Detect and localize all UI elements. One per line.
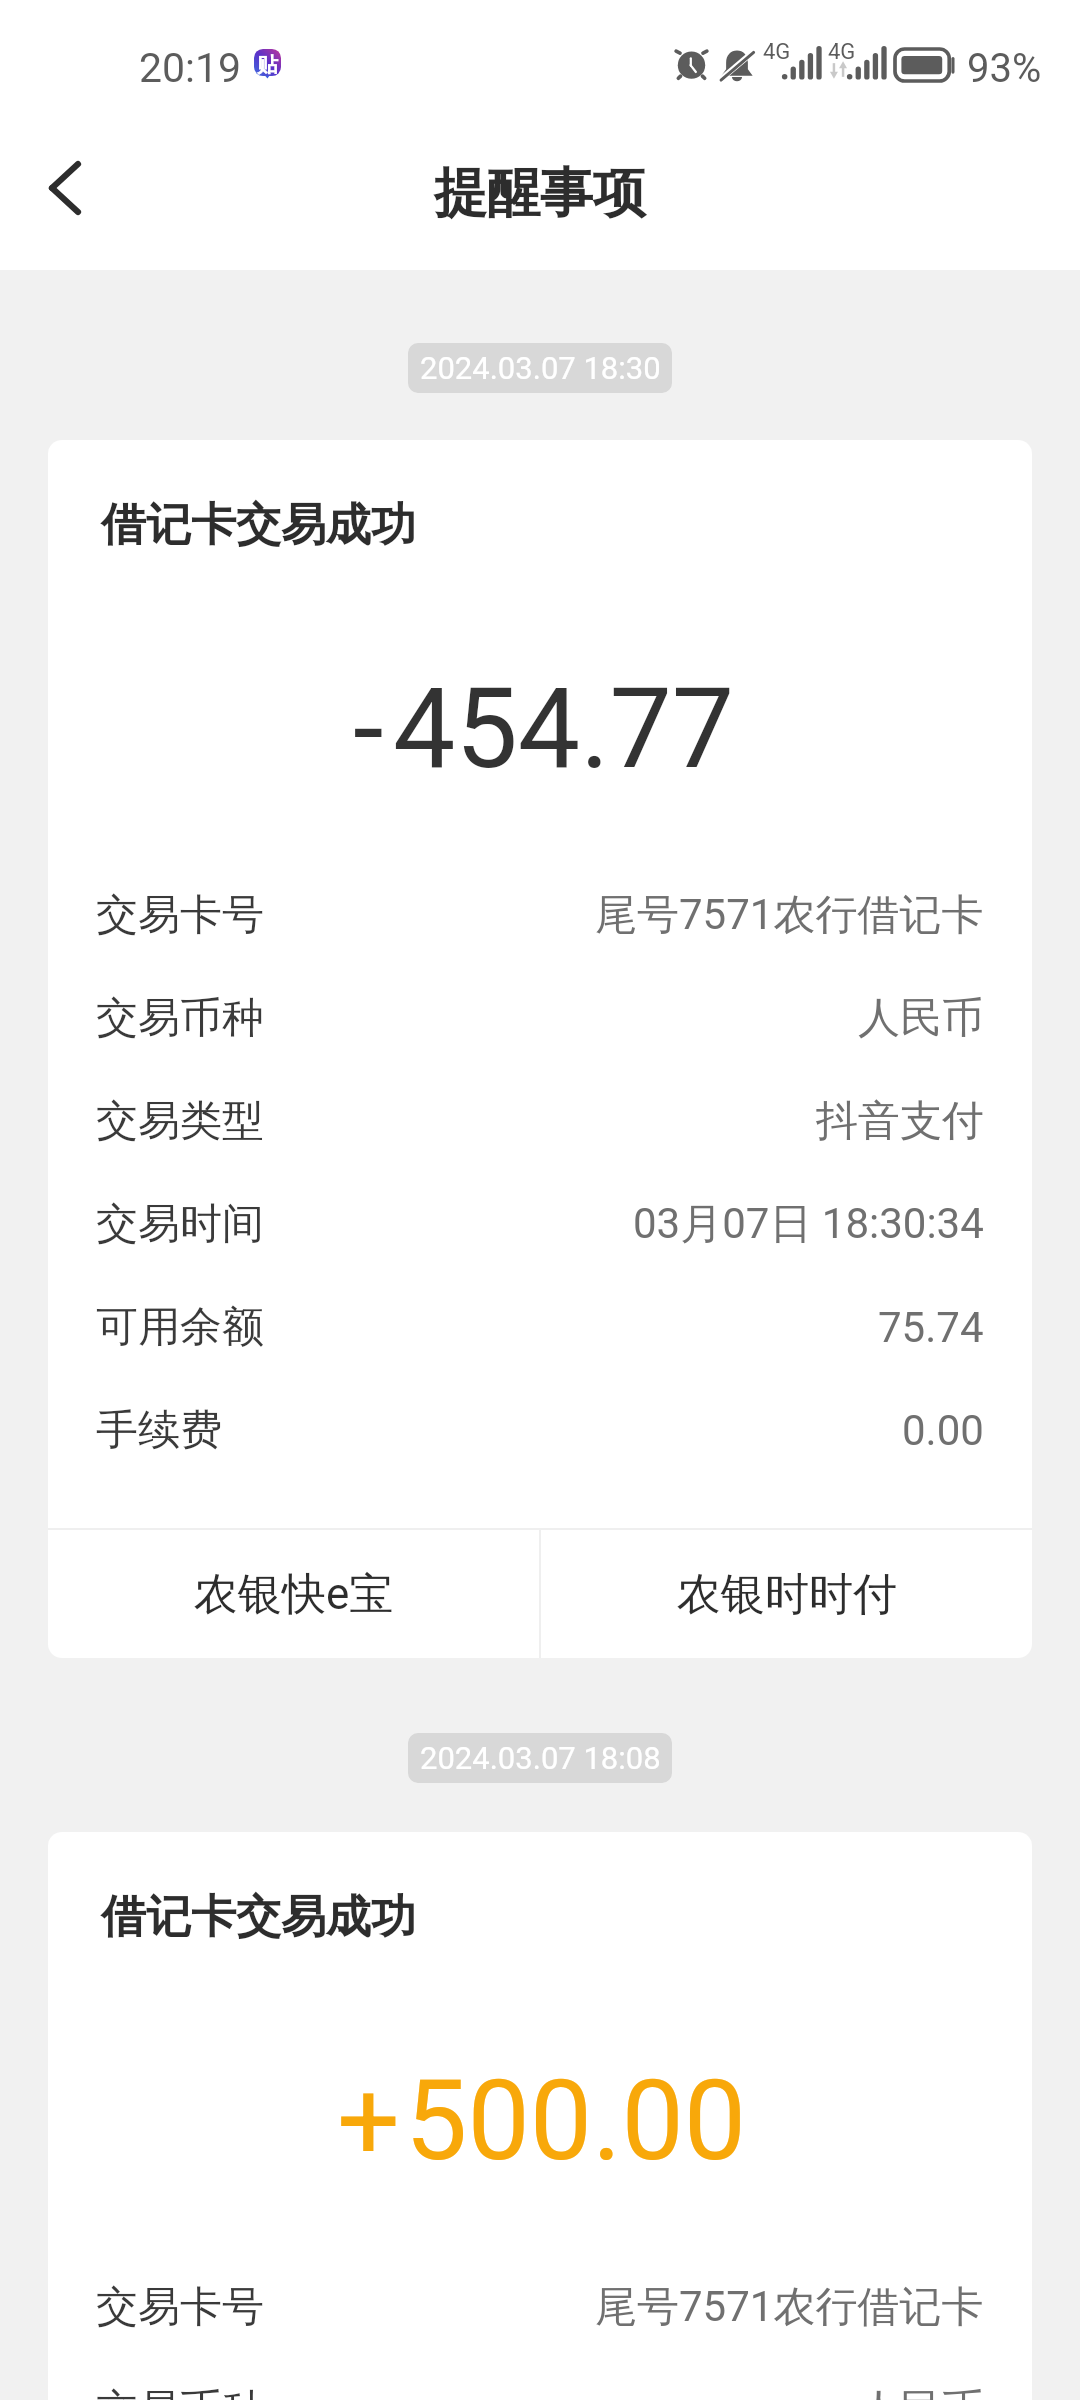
staticText: 贴 (257, 52, 278, 78)
staticText: 手续费 (96, 1404, 222, 1457)
button[interactable]: 借记卡交易成功 (48, 1832, 1032, 2400)
staticText: 0.00 (902, 1406, 984, 1455)
staticText: 2024.03.07 18:08 (420, 1740, 661, 1776)
staticText: 尾号7571农行借记卡 (595, 889, 984, 942)
staticText: 提醒事项 (434, 160, 646, 227)
staticText: 93% (967, 45, 1042, 92)
staticText: 03月07日 18:30:34 (633, 1198, 984, 1251)
staticText: + (337, 2056, 400, 2186)
staticText: 交易卡号 (96, 889, 264, 942)
button[interactable]: 农银时时付 (541, 1530, 1032, 1658)
staticText: 人民币 (858, 2384, 984, 2400)
staticText: 交易卡号 (96, 2281, 264, 2334)
staticText: 4G (828, 39, 856, 65)
button[interactable]: 农银快e宝 (48, 1530, 539, 1658)
staticText: 尾号7571农行借记卡 (595, 2281, 984, 2334)
staticText: 20:19 (139, 44, 242, 92)
staticText: 75.74 (878, 1303, 984, 1352)
staticText: 454.77 (393, 664, 735, 794)
staticText: 交易类型 (96, 1095, 264, 1148)
staticText: 抖音支付 (816, 1095, 984, 1148)
staticText: 人民币 (858, 992, 984, 1045)
staticText: 农银快e宝 (194, 1567, 394, 1622)
staticText: 2024.03.07 18:30 (420, 350, 661, 386)
staticText: 可用余额 (96, 1301, 264, 1354)
staticText: 交易币种 (96, 2384, 264, 2400)
staticText: 农银时时付 (677, 1567, 897, 1622)
staticText: 交易币种 (96, 992, 264, 1045)
staticText: 交易时间 (96, 1198, 264, 1251)
staticText: - (353, 664, 384, 794)
staticText: 借记卡交易成功 (101, 1889, 416, 1946)
button[interactable]: 借记卡交易成功 (48, 440, 1032, 1658)
staticText: 借记卡交易成功 (101, 497, 416, 554)
staticText: 4G (763, 39, 791, 65)
staticText: 500.00 (405, 2056, 747, 2186)
button[interactable]: Back (6, 128, 126, 248)
